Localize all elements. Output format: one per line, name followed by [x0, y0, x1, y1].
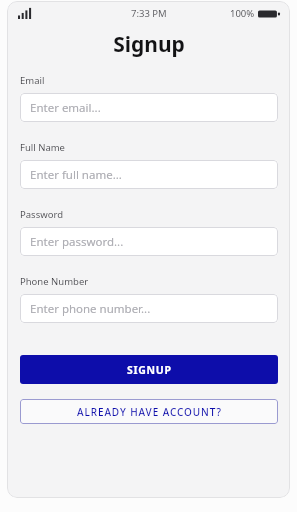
- staticText: Enter phone number...: [30, 301, 151, 317]
- staticText: Password: [20, 208, 63, 221]
- staticText: Phone Number: [20, 275, 89, 288]
- staticText: SIGNUP: [127, 363, 172, 377]
- staticText: Signup: [113, 30, 185, 59]
- staticText: 100%: [230, 7, 255, 20]
- staticText: 7:33 PM: [131, 7, 167, 20]
- staticText: Email: [20, 74, 45, 87]
- staticText: Enter password...: [30, 234, 124, 250]
- staticText: Enter full name...: [30, 167, 122, 183]
- button[interactable]: Enter phone number...: [20, 294, 278, 323]
- button[interactable]: SIGNUP: [20, 355, 278, 384]
- button[interactable]: Enter password...: [20, 227, 278, 256]
- button[interactable]: Enter full name...: [20, 160, 278, 189]
- staticText: Full Name: [20, 141, 65, 154]
- other: Battery full: [258, 9, 280, 19]
- other: Signal strength: [18, 8, 33, 19]
- button[interactable]: ALREADY HAVE ACCOUNT?: [20, 399, 278, 424]
- staticText: ALREADY HAVE ACCOUNT?: [77, 405, 222, 419]
- staticText: Enter email...: [30, 100, 101, 116]
- button[interactable]: Enter email...: [20, 93, 278, 122]
